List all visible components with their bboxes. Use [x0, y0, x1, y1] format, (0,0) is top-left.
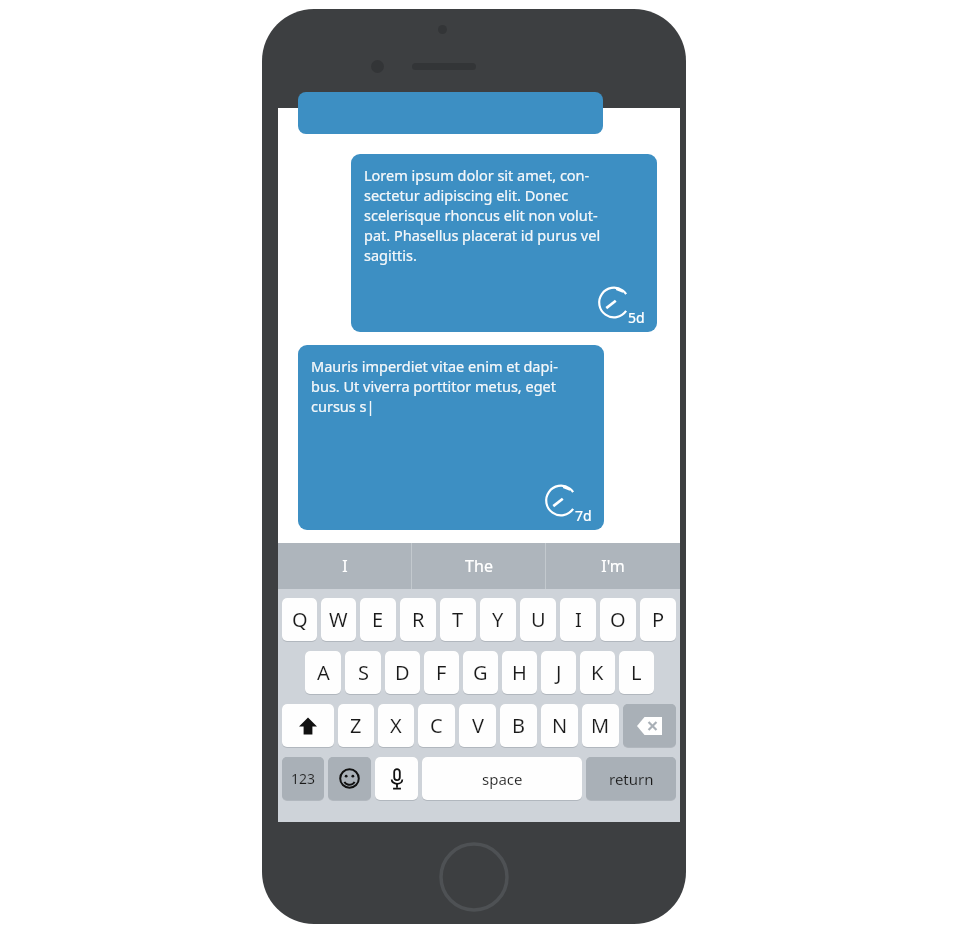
staticText: B: [512, 712, 525, 739]
staticText: K: [591, 659, 604, 686]
staticText: D: [395, 659, 410, 686]
button[interactable]: K: [580, 650, 615, 694]
button[interactable]: F: [424, 650, 459, 694]
staticText: I: [575, 606, 582, 633]
staticText: bus. Ut viverra porttitor metus, eget: [311, 376, 557, 396]
staticText: R: [412, 606, 425, 633]
staticText: P: [652, 606, 665, 633]
staticText: cursus s|: [311, 396, 375, 416]
button[interactable]: B: [500, 703, 537, 747]
other: Delete: [623, 703, 676, 747]
button[interactable]: N: [541, 703, 578, 747]
staticText: Z: [350, 712, 362, 739]
staticText: S: [358, 659, 369, 686]
button[interactable]: T: [440, 597, 476, 641]
button[interactable]: 123: [282, 756, 324, 800]
staticText: Mauris imperdiet vitae enim et dapi-: [311, 356, 558, 376]
button[interactable]: I'm: [546, 543, 680, 589]
staticText: The: [465, 555, 493, 577]
button[interactable]: O: [600, 597, 636, 641]
button[interactable]: A: [305, 650, 341, 694]
button[interactable]: G: [463, 650, 498, 694]
other: Dictate: [375, 756, 418, 800]
button[interactable]: I: [560, 597, 596, 641]
button[interactable]: The: [412, 543, 546, 589]
staticText: G: [473, 659, 488, 686]
button[interactable]: [282, 703, 334, 747]
button[interactable]: [328, 756, 371, 800]
staticText: 7d: [575, 506, 592, 525]
staticText: 5d: [628, 308, 645, 327]
button[interactable]: Y: [480, 597, 516, 641]
button[interactable]: X: [378, 703, 414, 747]
staticText: O: [610, 606, 626, 633]
other: Home: [439, 842, 509, 912]
other: Emoji: [328, 756, 371, 800]
button[interactable]: U: [520, 597, 556, 641]
staticText: scelerisque rhoncus elit non volut-: [364, 205, 598, 225]
staticText: T: [452, 606, 464, 633]
staticText: U: [531, 606, 546, 633]
button[interactable]: P: [640, 597, 676, 641]
staticText: Q: [292, 606, 308, 633]
staticText: Y: [492, 606, 504, 633]
button[interactable]: J: [541, 650, 576, 694]
staticText: V: [472, 712, 484, 739]
button[interactable]: I: [278, 543, 412, 589]
staticText: A: [317, 659, 330, 686]
staticText: return: [609, 769, 654, 789]
staticText: I: [342, 555, 348, 577]
staticText: W: [329, 606, 348, 633]
staticText: pat. Phasellus placerat id purus vel: [364, 225, 601, 245]
staticText: F: [436, 659, 447, 686]
button[interactable]: C: [418, 703, 455, 747]
staticText: sectetur adipiscing elit. Donec: [364, 185, 569, 205]
staticText: X: [390, 712, 402, 739]
staticText: M: [591, 712, 610, 739]
staticText: space: [482, 769, 523, 789]
button[interactable]: Q: [282, 597, 317, 641]
button[interactable]: E: [360, 597, 396, 641]
button[interactable]: [298, 92, 603, 134]
button[interactable]: Lorem ipsum dolor sit amet, con-: [351, 154, 657, 332]
button[interactable]: Mauris imperdiet vitae enim et dapi-: [298, 345, 604, 530]
button[interactable]: H: [502, 650, 537, 694]
button[interactable]: W: [321, 597, 356, 641]
staticText: H: [512, 659, 527, 686]
staticText: N: [552, 712, 568, 739]
staticText: sagittis.: [364, 245, 417, 265]
staticText: Lorem ipsum dolor sit amet, con-: [364, 165, 590, 185]
button[interactable]: return: [586, 756, 676, 800]
button[interactable]: S: [345, 650, 381, 694]
staticText: L: [631, 659, 642, 686]
staticText: J: [556, 659, 562, 686]
staticText: C: [430, 712, 443, 739]
staticText: 123: [291, 769, 316, 788]
button[interactable]: M: [582, 703, 619, 747]
button[interactable]: V: [459, 703, 496, 747]
button[interactable]: L: [619, 650, 654, 694]
staticText: E: [372, 606, 384, 633]
button[interactable]: [375, 756, 418, 800]
button[interactable]: R: [400, 597, 436, 641]
staticText: I'm: [601, 555, 625, 577]
button[interactable]: Z: [338, 703, 374, 747]
button[interactable]: [623, 703, 676, 747]
button[interactable]: D: [385, 650, 420, 694]
button[interactable]: space: [422, 756, 582, 800]
other: Shift: [282, 703, 334, 747]
